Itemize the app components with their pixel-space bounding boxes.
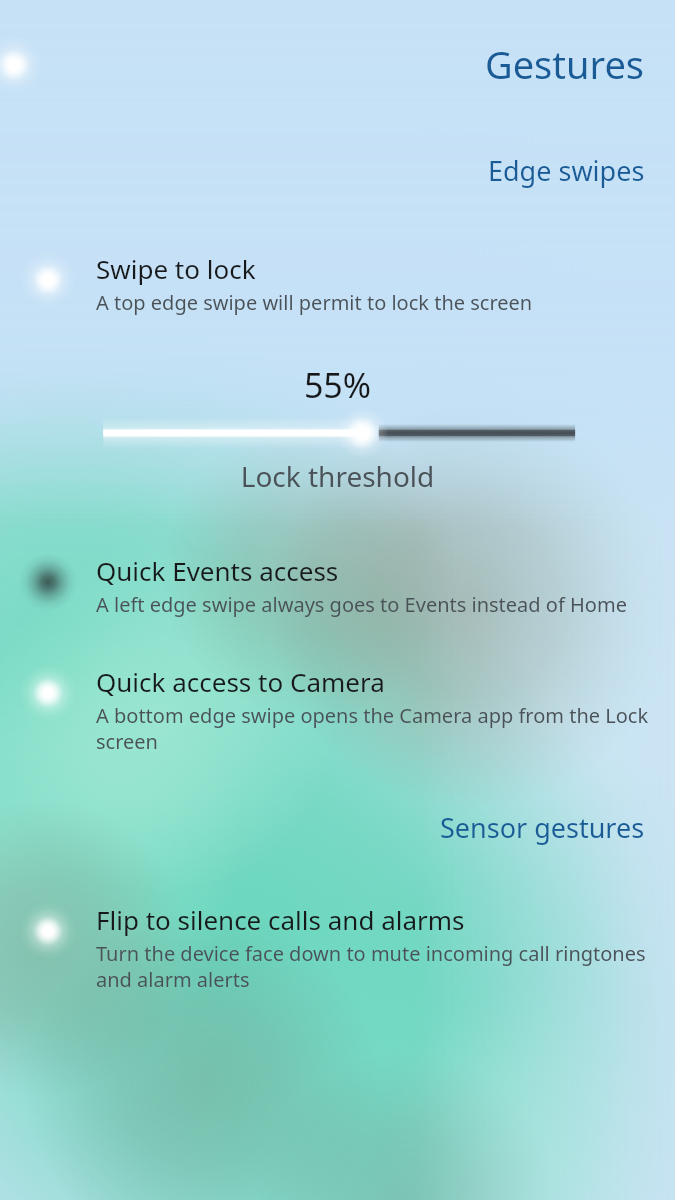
staticText: Gestures [485,38,645,90]
staticText: A bottom edge swipe opens the Camera app… [96,702,657,755]
other: Quick access to Camera [0,664,96,722]
button[interactable]: Gestures [0,38,675,90]
staticText: Quick access to Camera [96,664,385,699]
staticText: Sensor gestures [440,809,645,846]
other: Swipe to lock [0,251,96,309]
staticText: A left edge swipe always goes to Events … [96,591,627,618]
staticText: Turn the device face down to mute incomi… [96,940,657,993]
staticText: Swipe to lock [96,251,256,286]
button[interactable]: Quick Events access [0,553,675,618]
button[interactable]: Quick access to Camera [0,664,675,755]
button[interactable]: Lock threshold slider [0,410,675,456]
staticText: Edge swipes [488,152,645,189]
button[interactable]: Swipe to lock [0,251,675,316]
button[interactable]: Sensor gestures [0,809,675,846]
button[interactable]: Flip to silence calls and alarms [0,902,675,993]
staticText: Flip to silence calls and alarms [96,902,465,937]
staticText: Quick Events access [96,553,339,588]
button[interactable]: Edge swipes [0,152,675,189]
other: Flip to silence calls and alarms [0,902,96,960]
staticText: A top edge swipe will permit to lock the… [96,289,533,316]
other: Quick Events access [0,553,96,611]
staticText: 55% [0,362,675,408]
staticText: Lock threshold [0,457,675,495]
